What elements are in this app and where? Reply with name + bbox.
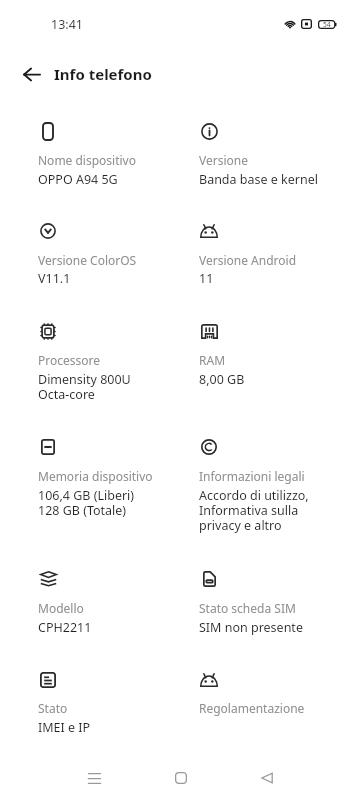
- button[interactable]: Nome dispositivo: [38, 117, 188, 187]
- staticText: OPPO A94 5G: [38, 171, 118, 188]
- button[interactable]: Processore: [38, 317, 188, 402]
- button[interactable]: Informazioni legali: [199, 433, 351, 533]
- button[interactable]: Stato scheda SIM: [199, 565, 351, 635]
- staticText: Stato: [38, 700, 68, 716]
- button[interactable]: Regolamentazione: [199, 666, 351, 735]
- staticText: 8,00 GB: [199, 371, 245, 388]
- button[interactable]: Modello: [38, 565, 188, 635]
- button[interactable]: Stato: [38, 666, 188, 735]
- button[interactable]: Versione Android: [199, 217, 351, 286]
- staticText: Accordo di utilizzo, Informativa sulla p…: [199, 487, 309, 534]
- staticText: Versione Android: [199, 252, 297, 268]
- button[interactable]: RAM: [199, 317, 351, 387]
- staticText: CPH2211: [38, 619, 92, 636]
- button[interactable]: Memoria dispositivo: [38, 433, 188, 518]
- staticText: Versione: [199, 152, 248, 168]
- button[interactable]: Versione: [199, 117, 351, 187]
- button[interactable]: Versione ColorOS: [38, 217, 188, 286]
- staticText: Dimensity 800U Octa-core: [38, 371, 131, 403]
- staticText: SIM non presente: [199, 619, 303, 636]
- button[interactable]: Back: [10, 53, 53, 96]
- staticText: Info telefono: [54, 64, 152, 84]
- staticText: 11: [199, 270, 214, 287]
- staticText: Stato scheda SIM: [199, 600, 296, 616]
- staticText: V11.1: [38, 270, 71, 287]
- staticText: Memoria dispositivo: [38, 468, 153, 484]
- button[interactable]: Recent apps: [70, 754, 119, 800]
- staticText: Informazioni legali: [199, 468, 305, 484]
- staticText: IMEI e IP: [38, 719, 91, 736]
- staticText: Modello: [38, 600, 84, 616]
- staticText: 54: [323, 20, 331, 29]
- staticText: Versione ColorOS: [38, 252, 137, 268]
- staticText: Regolamentazione: [199, 700, 305, 716]
- staticText: Processore: [38, 352, 101, 368]
- button[interactable]: Home: [156, 754, 205, 800]
- staticText: 13:41: [51, 16, 83, 33]
- staticText: 106,4 GB (Liberi) 128 GB (Totale): [38, 487, 135, 519]
- staticText: Banda base e kernel: [199, 171, 318, 188]
- staticText: RAM: [199, 352, 226, 368]
- staticText: Nome dispositivo: [38, 152, 136, 168]
- button[interactable]: Back: [242, 754, 291, 800]
